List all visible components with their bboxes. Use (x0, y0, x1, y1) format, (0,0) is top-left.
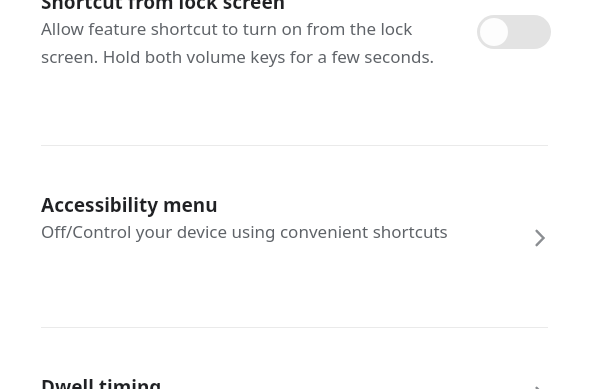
staticText: Allow feature shortcut to turn on from t… (41, 17, 467, 68)
button[interactable]: Shortcut from lock screen, off (477, 15, 551, 49)
staticText: Dwell timing (41, 374, 162, 389)
staticText: Off/Control your device using convenient… (41, 220, 448, 243)
staticText: Shortcut from lock screen (41, 0, 286, 15)
button[interactable]: Dwell timing (0, 374, 590, 389)
button[interactable]: Shortcut from lock screen (0, 0, 590, 68)
button[interactable]: Accessibility menu (0, 192, 590, 243)
staticText: Accessibility menu (41, 192, 218, 218)
